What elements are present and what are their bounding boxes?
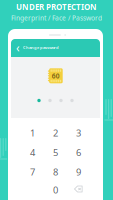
button[interactable]: 2 [44,123,67,142]
button[interactable]: 3 [67,123,90,142]
staticText: UNDER PROTECTION [16,1,97,12]
button[interactable]: 1 [21,123,44,142]
button[interactable]: 7 [21,162,44,181]
staticText: 7 [30,166,35,178]
staticText: 60 [52,71,60,80]
staticText: 3 [76,127,81,139]
staticText: 1 [30,127,35,139]
button[interactable]: 8 [44,162,67,181]
staticText: ‹ [16,39,20,55]
staticText: Fingerprint / Face / Password [11,14,102,22]
staticText: 9 [76,166,81,178]
button[interactable]: 5 [44,143,67,162]
button[interactable]: Delete [67,179,90,198]
staticText: 2 [53,127,58,139]
staticText: 5 [53,146,58,159]
staticText: 0 [53,184,58,196]
button[interactable]: 0 [44,180,67,199]
staticText: Change password [23,45,59,50]
button[interactable]: 9 [67,162,90,181]
staticText: 4 [30,146,35,159]
button[interactable]: 6 [67,143,90,162]
staticText: 6 [76,146,81,159]
button[interactable]: 4 [21,143,44,162]
button[interactable]: ‹ [16,41,64,53]
staticText: 8 [53,166,58,178]
